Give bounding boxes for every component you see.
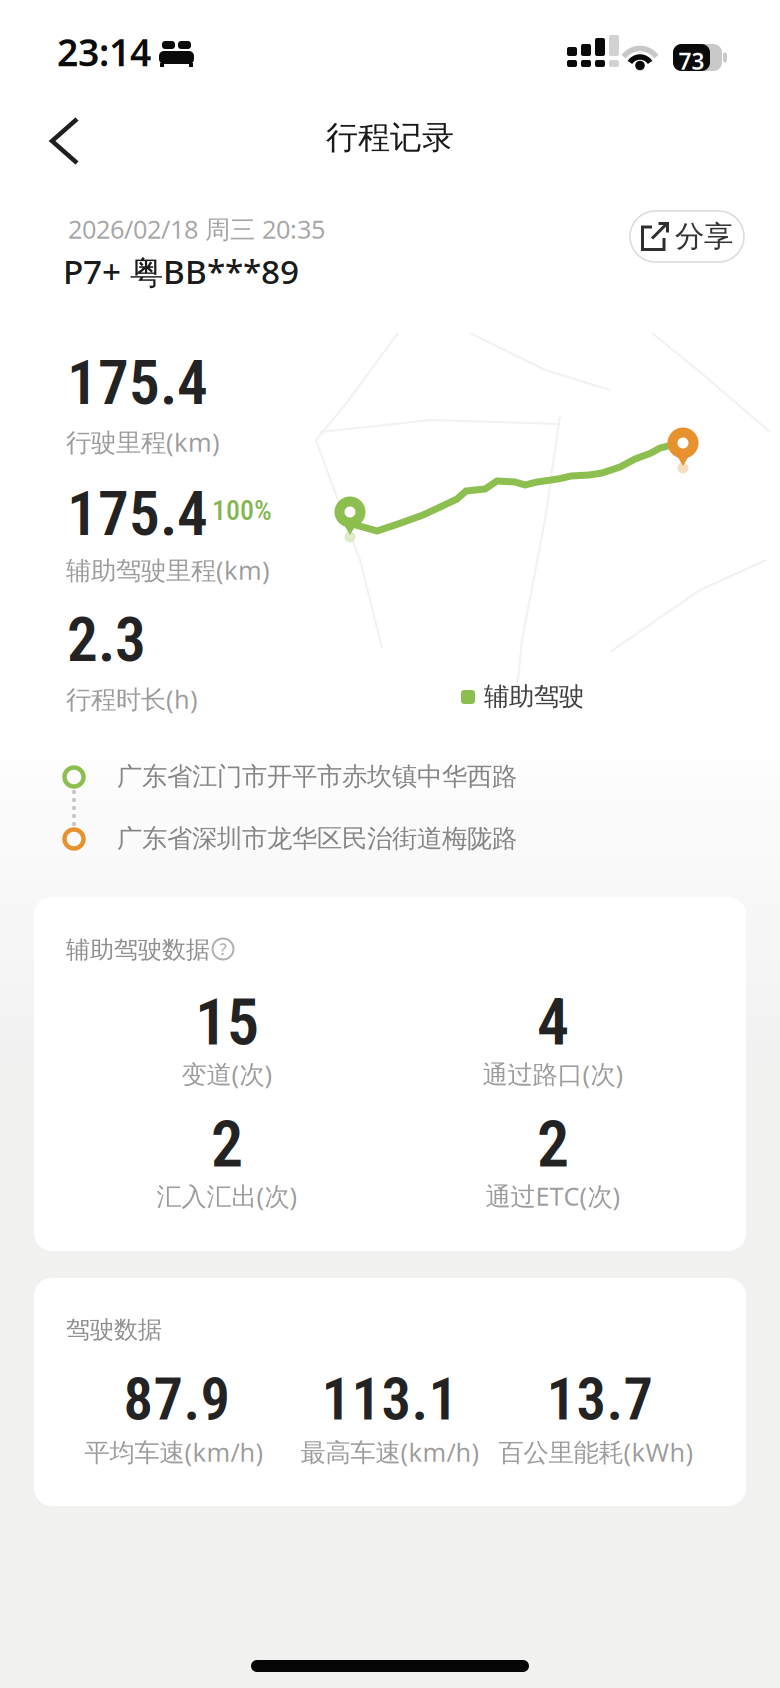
staticText: ? [219, 938, 226, 960]
staticText: 87.9 [123, 1365, 230, 1434]
staticText: P7+ 粤BB***89 [63, 249, 299, 293]
button[interactable]: ? [212, 938, 234, 960]
staticText: 变道(次) [181, 1057, 272, 1091]
staticText: 辅助驾驶里程(km) [66, 553, 270, 587]
button[interactable] [44, 116, 84, 166]
staticText: 辅助驾驶数据 [66, 935, 210, 964]
staticText: 广东省深圳市龙华区民治街道梅陇路 [117, 823, 517, 854]
staticText: 分享 [675, 218, 733, 254]
staticText: 行驶里程(km) [66, 425, 220, 459]
staticText: 汇入汇出(次) [156, 1179, 297, 1213]
staticText: 行程时长(h) [66, 682, 198, 716]
staticText: 辅助驾驶 [484, 681, 584, 712]
staticText: 113.1 [321, 1365, 458, 1434]
staticText: 最高车速(km/h) [300, 1435, 479, 1469]
button[interactable]: 分享 [630, 211, 744, 262]
staticText: 175.4 [67, 478, 208, 550]
staticText: 15 [195, 985, 259, 1060]
staticText: 2026/02/18 周三 20:35 [68, 212, 325, 246]
staticText: 2 [537, 1107, 569, 1182]
staticText: 通过ETC(次) [485, 1179, 620, 1213]
staticText: 73 [678, 46, 704, 76]
staticText: 驾驶数据 [66, 1315, 162, 1344]
staticText: 23:14 [57, 27, 151, 77]
staticText: 通过路口(次) [482, 1057, 623, 1091]
staticText: 行程记录 [326, 118, 454, 157]
staticText: 2 [211, 1107, 243, 1182]
staticText: 广东省江门市开平市赤坎镇中华西路 [117, 761, 517, 792]
staticText: 175.4 [67, 347, 208, 419]
staticText: 平均车速(km/h) [84, 1435, 263, 1469]
staticText: 13.7 [546, 1365, 653, 1434]
staticText: 百公里能耗(kWh) [498, 1435, 693, 1469]
staticText: 4 [537, 985, 569, 1060]
staticText: 2.3 [67, 604, 146, 676]
staticText: 100% [212, 494, 272, 527]
